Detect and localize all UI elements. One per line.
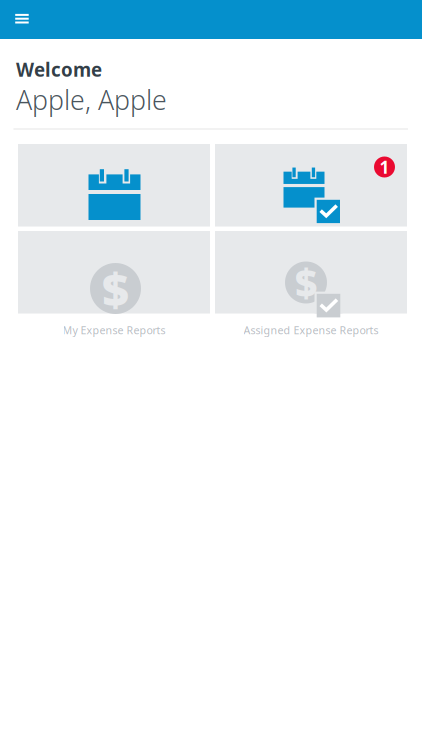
staticText: $ — [102, 257, 129, 319]
button[interactable]: Approve Expense Reports — [215, 144, 407, 226]
button[interactable]: Expense Reports — [18, 144, 210, 226]
button[interactable]: My Expense Reports — [18, 231, 210, 313]
staticText: $ — [295, 257, 317, 308]
staticText: Assigned Expense Reports — [243, 323, 378, 337]
staticText: 1 — [379, 155, 389, 178]
button[interactable]: Assigned Expense Reports — [215, 231, 407, 313]
button[interactable]: Menu — [0, 0, 422, 39]
staticText: My Expense Reports — [62, 323, 165, 337]
staticText: Apple, Apple — [16, 82, 167, 117]
staticText: Welcome — [16, 57, 102, 82]
